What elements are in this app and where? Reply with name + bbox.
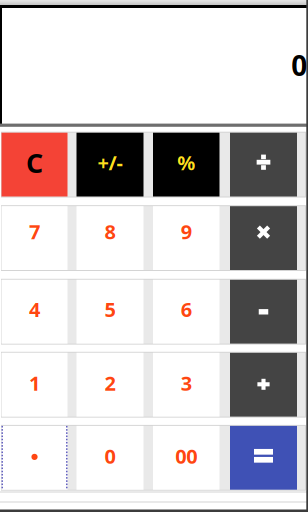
staticText: 0 — [291, 47, 307, 84]
button[interactable]: 8 — [76, 206, 143, 270]
button[interactable]: 6 — [153, 280, 219, 344]
staticText: 7 — [29, 218, 40, 245]
button[interactable]: Divide — [230, 133, 297, 196]
button[interactable]: 0 — [76, 426, 143, 490]
staticText: 00 — [175, 443, 197, 469]
button[interactable]: +/- — [76, 133, 143, 196]
staticText: 3 — [181, 370, 192, 396]
staticText: % — [177, 149, 195, 176]
button[interactable]: Equals — [230, 426, 297, 490]
staticText: 0 — [104, 443, 115, 469]
button[interactable]: C — [1, 133, 67, 196]
staticText: 5 — [104, 296, 115, 323]
button[interactable]: Add — [230, 353, 297, 417]
button[interactable]: % — [153, 133, 219, 196]
button[interactable]: 5 — [76, 280, 143, 344]
button[interactable]: 1 — [1, 353, 67, 417]
button[interactable]: Decimal point — [1, 426, 67, 490]
staticText: C — [26, 145, 43, 180]
staticText: 2 — [104, 370, 115, 396]
staticText: 1 — [29, 370, 40, 396]
button[interactable]: Multiply — [230, 206, 297, 270]
staticText: 6 — [181, 296, 192, 323]
button[interactable]: 7 — [1, 206, 67, 270]
staticText: 4 — [29, 296, 40, 323]
button[interactable]: 00 — [153, 426, 219, 490]
staticText: +/- — [97, 149, 122, 176]
button[interactable]: 3 — [153, 353, 219, 417]
staticText: 9 — [181, 218, 192, 245]
staticText: 8 — [104, 218, 115, 245]
button[interactable]: 4 — [1, 280, 67, 344]
button[interactable]: 2 — [76, 353, 143, 417]
button[interactable]: 9 — [153, 206, 219, 270]
button[interactable]: Subtract — [230, 280, 297, 344]
